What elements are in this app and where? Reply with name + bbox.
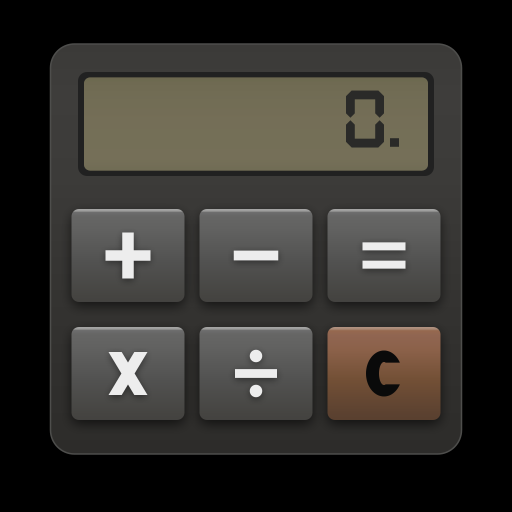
button[interactable]: Equals	[327, 209, 440, 302]
button[interactable]: Clear	[327, 327, 440, 420]
button[interactable]: Divide	[199, 327, 312, 420]
button[interactable]: Multiply	[71, 327, 184, 420]
button[interactable]: Plus	[71, 209, 184, 302]
button[interactable]: Minus	[199, 209, 312, 302]
